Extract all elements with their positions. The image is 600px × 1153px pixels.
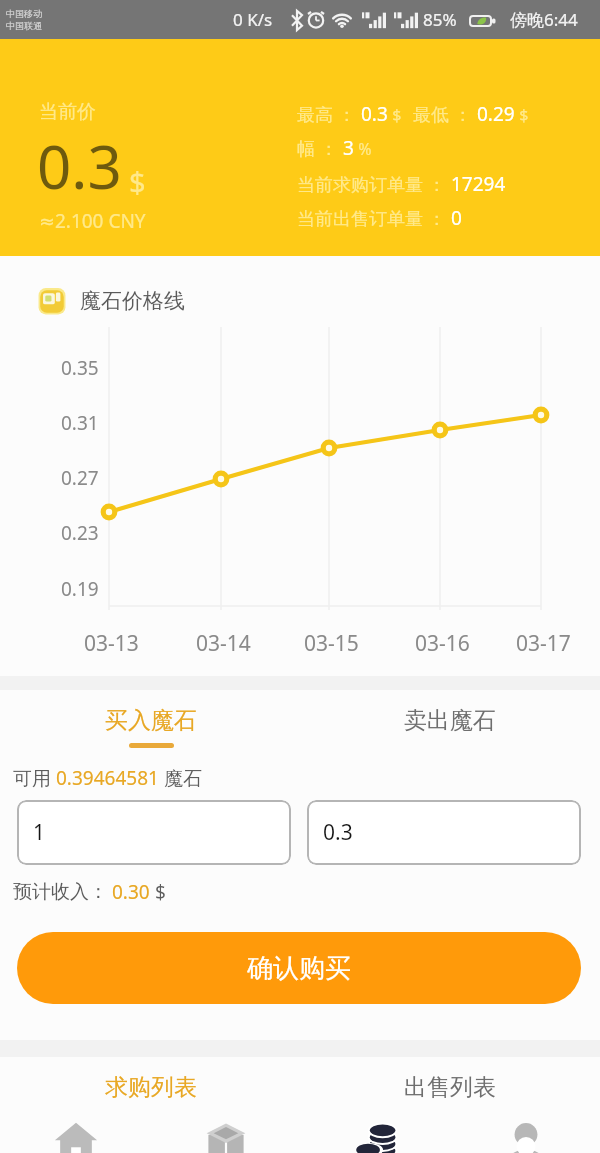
- staticText: 03-16: [415, 629, 470, 658]
- staticText: 幅 ：: [297, 136, 343, 161]
- staticText: 魔石: [159, 765, 202, 791]
- staticText: $: [388, 104, 402, 126]
- staticText: 0.23: [61, 520, 99, 546]
- staticText: 03-17: [516, 629, 571, 658]
- staticText: 0.39464581: [56, 765, 159, 791]
- button[interactable]: 卖出魔石: [300, 690, 600, 750]
- staticText: 卖出魔石: [404, 706, 496, 735]
- button[interactable]: 买入魔石: [0, 690, 300, 750]
- staticText: 预计收入：: [13, 880, 108, 904]
- button[interactable]: 1: [17, 800, 291, 865]
- staticText: 0 K/s: [233, 8, 273, 31]
- staticText: 0.3: [323, 818, 353, 847]
- staticText: 85%: [423, 8, 457, 31]
- button[interactable]: 出售列表: [300, 1057, 600, 1105]
- button[interactable]: 0.3: [307, 800, 581, 865]
- staticText: 0.30: [112, 879, 150, 905]
- staticText: 当前价: [39, 100, 96, 124]
- staticText: 可用: [13, 765, 56, 791]
- staticText: 最低 ：: [413, 102, 477, 127]
- staticText: 确认购买: [247, 952, 351, 985]
- staticText: 中国移动: [6, 8, 42, 19]
- staticText: 0.3: [361, 101, 388, 127]
- staticText: 求购列表: [105, 1073, 197, 1102]
- staticText: 买入魔石: [105, 706, 197, 735]
- staticText: 1: [33, 818, 46, 847]
- staticText: 0.3: [37, 125, 122, 207]
- staticText: 魔石价格线: [80, 288, 185, 314]
- staticText: 03-13: [84, 629, 139, 658]
- staticText: 0: [451, 205, 462, 231]
- staticText: %: [354, 138, 372, 160]
- staticText: 03-15: [304, 629, 359, 658]
- staticText: 0.27: [61, 465, 99, 491]
- button[interactable]: 求购列表: [0, 1057, 300, 1105]
- staticText: $: [150, 879, 166, 905]
- staticText: 当前出售订单量 ：: [297, 206, 451, 231]
- staticText: 03-14: [196, 629, 251, 658]
- staticText: 0.29: [477, 101, 515, 127]
- staticText: 17294: [451, 171, 506, 197]
- staticText: $: [129, 162, 146, 201]
- button[interactable]: 确认购买: [17, 932, 581, 1004]
- staticText: 当前求购订单量 ：: [297, 172, 451, 197]
- staticText: 最高 ：: [297, 102, 361, 127]
- staticText: 0.31: [61, 410, 99, 436]
- staticText: 中国联通: [6, 20, 42, 31]
- button[interactable]: Profile: [488, 1105, 563, 1153]
- button[interactable]: Home: [38, 1105, 113, 1153]
- button[interactable]: Products: [188, 1105, 263, 1153]
- staticText: $: [515, 104, 529, 126]
- staticText: 出售列表: [404, 1073, 496, 1102]
- staticText: 0.35: [61, 355, 99, 381]
- button[interactable]: Coins: [338, 1105, 413, 1153]
- staticText: 3: [343, 135, 354, 161]
- staticText: ≈2.100 CNY: [39, 208, 146, 234]
- staticText: 0.19: [61, 576, 99, 602]
- staticText: 傍晚6:44: [510, 8, 578, 31]
